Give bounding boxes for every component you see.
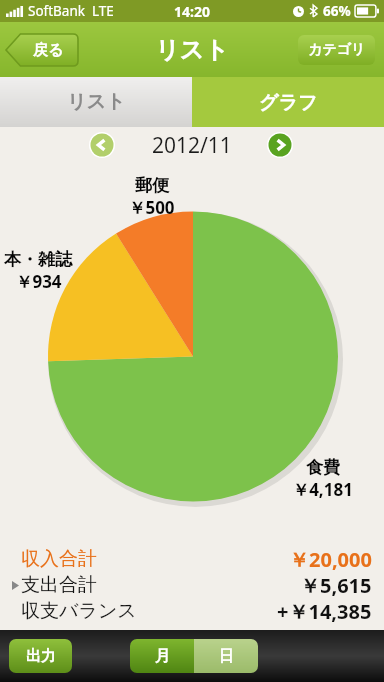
button[interactable]: 前の月 bbox=[89, 132, 115, 158]
staticText: リスト bbox=[67, 90, 126, 114]
button[interactable]: 収入合計 bbox=[10, 546, 372, 572]
button[interactable]: グラフ bbox=[195, 81, 381, 124]
staticText: LTE bbox=[92, 2, 114, 20]
button[interactable]: 次の月 bbox=[267, 132, 293, 158]
staticText: ￥20,000 bbox=[289, 546, 372, 572]
staticText: 食費 bbox=[306, 457, 340, 478]
staticText: グラフ bbox=[259, 91, 318, 115]
button[interactable]: カテゴリ bbox=[298, 35, 375, 65]
button[interactable]: 月 bbox=[130, 639, 194, 673]
staticText: カテゴリ bbox=[308, 41, 366, 59]
staticText: 出力 bbox=[26, 647, 56, 666]
staticText: 郵便 bbox=[135, 175, 169, 196]
staticText: +￥14,385 bbox=[277, 598, 372, 624]
staticText: ￥5,615 bbox=[300, 572, 372, 598]
staticText: 2012/11 bbox=[152, 131, 232, 160]
staticText: 月 bbox=[155, 647, 170, 666]
staticText: 戻る bbox=[33, 41, 64, 60]
staticText: 66% bbox=[323, 2, 351, 20]
staticText: 14:20 bbox=[174, 2, 210, 21]
staticText: ￥934 bbox=[15, 270, 62, 293]
staticText: リスト bbox=[155, 35, 229, 65]
button[interactable]: 日 bbox=[194, 639, 258, 673]
staticText: 日 bbox=[219, 647, 234, 666]
staticText: ￥500 bbox=[128, 196, 175, 219]
button[interactable]: 戻る bbox=[6, 34, 78, 66]
staticText: SoftBank bbox=[28, 2, 85, 20]
button[interactable]: 支出合計 bbox=[10, 572, 372, 598]
staticText: 本・雑誌 bbox=[4, 249, 72, 270]
button[interactable]: リスト bbox=[0, 77, 192, 127]
staticText: 収入合計 bbox=[21, 547, 97, 571]
staticText: 収支バランス bbox=[21, 599, 137, 623]
staticText: 支出合計 bbox=[21, 573, 97, 597]
button[interactable]: 出力 bbox=[9, 639, 72, 673]
staticText: ￥4,181 bbox=[292, 478, 353, 501]
button[interactable]: 収支バランス bbox=[10, 598, 372, 624]
